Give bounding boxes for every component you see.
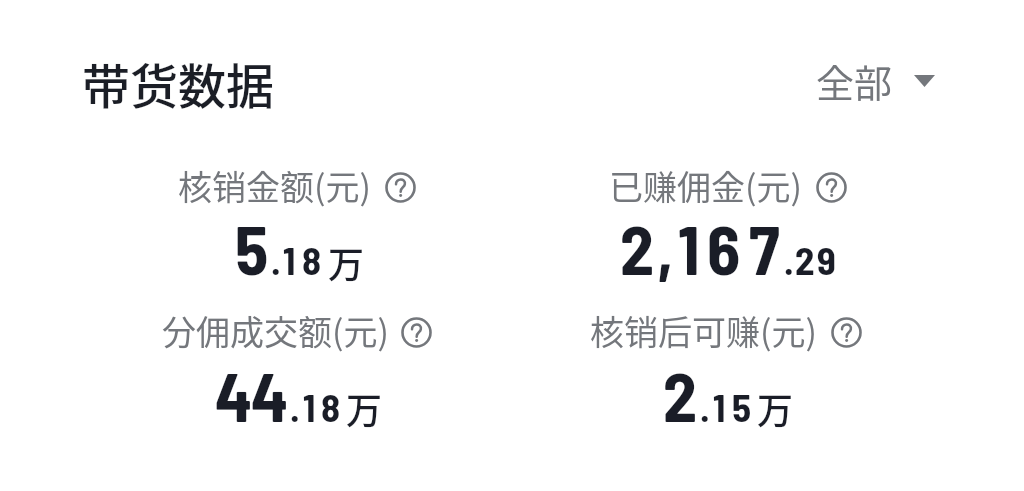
staticText: . bbox=[290, 383, 300, 430]
staticText: 8 bbox=[321, 383, 341, 430]
staticText: 1 bbox=[303, 383, 316, 430]
button[interactable]: 说明 bbox=[385, 172, 416, 203]
staticText: 8 bbox=[302, 236, 322, 283]
button[interactable]: 说明 bbox=[401, 317, 432, 348]
staticText: 4 bbox=[251, 354, 288, 436]
staticText: 核销后可赚(元) bbox=[590, 306, 817, 355]
staticText: 1 bbox=[678, 207, 700, 289]
staticText: 全部 bbox=[816, 53, 893, 108]
staticText: 5 bbox=[235, 207, 269, 289]
staticText: 1 bbox=[713, 383, 726, 430]
button[interactable]: 说明 bbox=[816, 172, 847, 203]
staticText: 2 bbox=[663, 354, 697, 436]
staticText: 9 bbox=[817, 236, 836, 283]
staticText: 万 bbox=[328, 236, 365, 288]
staticText: 6 bbox=[707, 207, 741, 289]
button[interactable]: 说明 bbox=[831, 317, 862, 348]
staticText: 4 bbox=[215, 354, 252, 436]
staticText: 已赚佣金(元) bbox=[609, 161, 802, 210]
staticText: . bbox=[700, 383, 710, 430]
staticText: 1 bbox=[283, 236, 296, 283]
staticText: , bbox=[657, 207, 674, 289]
staticText: 分佣成交额(元) bbox=[162, 306, 389, 355]
staticText: 2 bbox=[620, 207, 654, 289]
staticText: 2 bbox=[795, 236, 815, 283]
staticText: 万 bbox=[757, 382, 794, 434]
button[interactable]: 全部 bbox=[806, 43, 948, 105]
staticText: . bbox=[271, 236, 281, 283]
staticText: 带货数据 bbox=[82, 48, 275, 118]
staticText: . bbox=[784, 236, 794, 283]
staticText: 核销金额(元) bbox=[178, 161, 371, 210]
staticText: 万 bbox=[346, 382, 383, 434]
staticText: 7 bbox=[749, 207, 780, 289]
staticText: 5 bbox=[732, 383, 752, 430]
